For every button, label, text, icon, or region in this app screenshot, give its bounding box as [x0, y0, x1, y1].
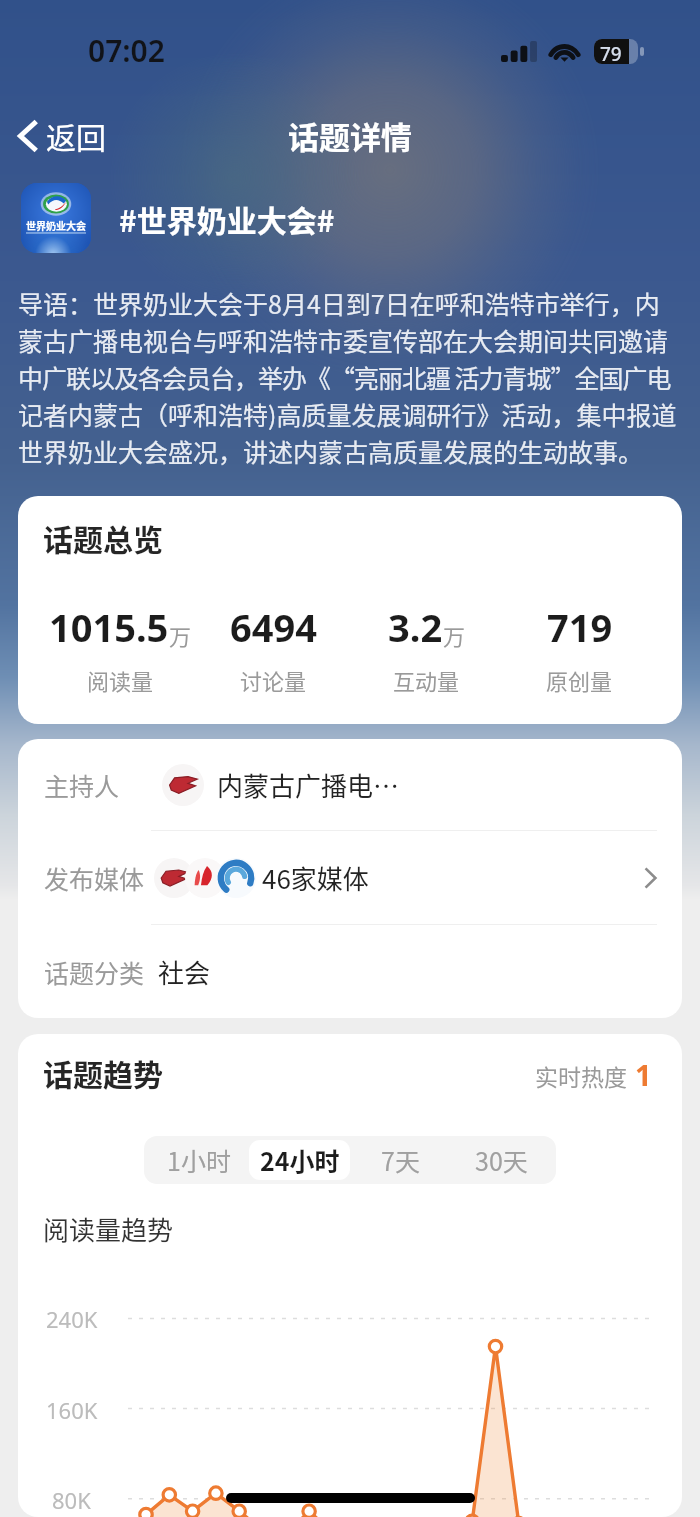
staticText: 6494 [230, 601, 317, 653]
button[interactable]: 1小时 [148, 1140, 249, 1180]
staticText: 主持人 [44, 767, 120, 803]
staticText: 话题总览 [43, 516, 163, 559]
button[interactable]: 话题分类 [18, 925, 682, 1018]
staticText: 240K [46, 1304, 98, 1334]
button[interactable]: 返回 [0, 108, 118, 163]
staticText: 3.2 [388, 601, 443, 653]
button[interactable]: 主持人 [18, 739, 682, 830]
staticText: 24小时 [260, 1142, 340, 1178]
button[interactable]: 24小时 [249, 1140, 350, 1180]
button[interactable]: 30天 [451, 1140, 552, 1180]
staticText: 7天 [381, 1142, 420, 1178]
staticText: 1小时 [167, 1142, 231, 1178]
staticText: 互动量 [393, 664, 460, 696]
staticText: 内蒙古广播电… [217, 766, 400, 804]
staticText: 阅读量 [87, 664, 154, 696]
button[interactable]: 发布媒体 [18, 831, 682, 924]
staticText: 记者内蒙古（呼和浩特)高质量发展调研行》活动，集中报道 [18, 396, 677, 433]
staticText: 1015.5 [49, 601, 169, 653]
staticText: 79 [600, 41, 622, 67]
staticText: 30天 [475, 1142, 528, 1178]
button[interactable]: 7天 [350, 1140, 451, 1180]
staticText: 话题趋势 [43, 1051, 163, 1094]
staticText: 蒙古广播电视台与呼和浩特市委宣传部在大会期间共同邀请 [18, 322, 669, 359]
staticText: 导语：世界奶业大会于8月4日到7日在呼和浩特市举行，内 [18, 285, 660, 322]
staticText: 万 [443, 619, 466, 651]
staticText: 话题详情 [288, 113, 412, 158]
staticText: 原创量 [546, 664, 613, 696]
staticText: 中广联以及各会员台，举办《“亮丽北疆 活力青城”全国广电 [18, 359, 671, 396]
staticText: 万 [169, 619, 192, 651]
staticText: 07:02 [88, 30, 165, 71]
staticText: 社会 [158, 953, 211, 991]
staticText: 80K [52, 1485, 91, 1515]
staticText: 话题分类 [44, 954, 145, 990]
staticText: 719 [547, 601, 613, 653]
staticText: 46家媒体 [262, 859, 369, 897]
staticText: 世界奶业大会 [26, 218, 86, 232]
staticText: 发布媒体 [44, 860, 145, 896]
staticText: 1 [635, 1055, 652, 1094]
staticText: #世界奶业大会# [119, 197, 335, 240]
staticText: 实时热度 [535, 1059, 627, 1092]
staticText: 讨论量 [240, 664, 307, 696]
staticText: 返回 [46, 114, 106, 157]
staticText: 160K [46, 1395, 98, 1425]
staticText: 阅读量趋势 [43, 1210, 174, 1248]
staticText: 世界奶业大会盛况，讲述内蒙古高质量发展的生动故事。 [18, 433, 644, 470]
